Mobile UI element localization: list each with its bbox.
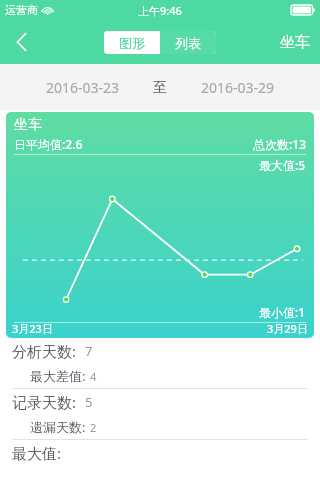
- staticText: 遗漏天数:: [30, 418, 86, 436]
- button[interactable]: 分析天数:: [0, 338, 320, 364]
- staticText: 记录天数:: [12, 392, 77, 412]
- button[interactable]: 2016-03-23: [0, 78, 153, 97]
- button[interactable]: 列表: [160, 31, 216, 54]
- staticText: 至: [153, 79, 167, 97]
- staticText: 3月23日: [12, 321, 53, 336]
- staticText: 坐车: [14, 116, 42, 134]
- button[interactable]: 最大差值:: [0, 364, 320, 388]
- staticText: 最大值:: [12, 443, 62, 463]
- button[interactable]: 2016-03-29: [167, 78, 320, 97]
- staticText: 最小值:1: [259, 304, 306, 320]
- button[interactable]: 图形: [104, 31, 160, 54]
- staticText: 列表: [175, 35, 201, 51]
- staticText: 总次数:13: [253, 136, 306, 152]
- staticText: 7: [85, 342, 93, 360]
- button[interactable]: 记录天数:: [0, 389, 320, 415]
- staticText: 上午9:46: [138, 3, 182, 18]
- staticText: 3月29日: [267, 321, 308, 336]
- button[interactable]: 坐车: [6, 112, 314, 338]
- button[interactable]: 返回: [0, 20, 44, 64]
- button[interactable]: 最大值:: [0, 440, 320, 466]
- staticText: 5: [85, 393, 93, 411]
- staticText: 2: [90, 420, 97, 435]
- staticText: 图形: [119, 35, 145, 51]
- staticText: 分析天数:: [12, 341, 77, 361]
- staticText: 2016-03-23: [46, 78, 120, 97]
- staticText: 运营商: [5, 3, 38, 17]
- button[interactable]: 遗漏天数:: [0, 415, 320, 439]
- staticText: 日平均值:2.6: [14, 136, 83, 152]
- staticText: 2016-03-29: [201, 78, 275, 97]
- staticText: 最大值:5: [259, 157, 306, 173]
- staticText: 最大差值:: [30, 367, 86, 385]
- button[interactable]: 坐车: [280, 33, 310, 52]
- staticText: 4: [90, 369, 97, 384]
- staticText: 坐车: [280, 33, 310, 52]
